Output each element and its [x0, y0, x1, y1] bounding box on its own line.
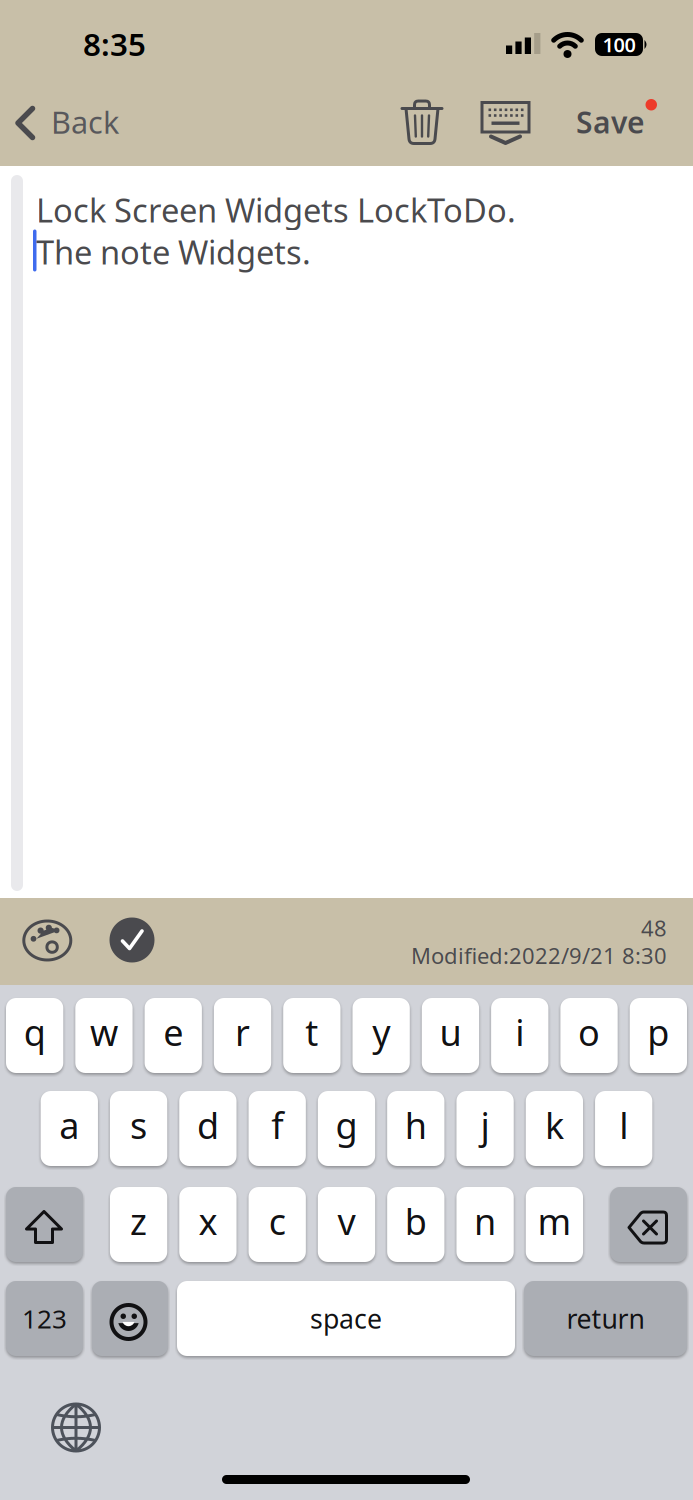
- button[interactable]: k: [526, 1091, 583, 1166]
- staticText: q: [24, 1007, 46, 1056]
- button[interactable]: Colors: [18, 915, 74, 965]
- staticText: t: [305, 1007, 318, 1056]
- button[interactable]: v: [318, 1187, 375, 1262]
- button[interactable]: p: [630, 998, 687, 1073]
- button[interactable]: n: [456, 1187, 514, 1262]
- button[interactable]: b: [387, 1187, 444, 1262]
- button[interactable]: Shift: [6, 1187, 83, 1262]
- button[interactable]: z: [110, 1187, 167, 1262]
- button[interactable]: r: [214, 998, 271, 1073]
- button[interactable]: return: [524, 1281, 687, 1356]
- staticText: k: [545, 1100, 564, 1149]
- button[interactable]: h: [387, 1091, 444, 1166]
- staticText: s: [130, 1100, 147, 1149]
- button[interactable]: d: [179, 1091, 236, 1166]
- staticText: r: [235, 1007, 250, 1056]
- staticText: z: [130, 1196, 147, 1245]
- staticText: p: [647, 1007, 669, 1056]
- button[interactable]: Next keyboard: [46, 1397, 106, 1457]
- button[interactable]: g: [318, 1091, 375, 1166]
- button[interactable]: q: [6, 998, 63, 1073]
- staticText: v: [337, 1196, 355, 1245]
- staticText: Back: [51, 101, 119, 143]
- button[interactable]: w: [75, 998, 133, 1073]
- staticText: g: [335, 1100, 357, 1149]
- button[interactable]: Save: [576, 101, 645, 142]
- staticText: j: [481, 1100, 490, 1149]
- button[interactable]: Emoji: [92, 1281, 168, 1356]
- button[interactable]: 123: [6, 1281, 83, 1356]
- button[interactable]: i: [491, 998, 548, 1073]
- staticText: u: [439, 1007, 461, 1056]
- button[interactable]: Delete: [610, 1187, 687, 1262]
- staticText: a: [59, 1100, 79, 1149]
- staticText: h: [405, 1100, 427, 1149]
- button[interactable]: m: [526, 1187, 583, 1262]
- button[interactable]: space: [177, 1281, 515, 1356]
- staticText: f: [271, 1100, 283, 1149]
- staticText: 8:35: [83, 22, 146, 65]
- button[interactable]: Delete note: [396, 97, 448, 149]
- staticText: d: [197, 1100, 219, 1149]
- staticText: o: [578, 1007, 600, 1056]
- staticText: l: [619, 1100, 628, 1149]
- staticText: e: [163, 1007, 183, 1056]
- staticText: The note Widgets.: [36, 229, 311, 274]
- staticText: space: [310, 1300, 382, 1337]
- staticText: c: [269, 1196, 286, 1245]
- staticText: n: [474, 1196, 496, 1245]
- staticText: 123: [22, 1301, 67, 1336]
- staticText: m: [537, 1196, 571, 1245]
- button[interactable]: j: [456, 1091, 514, 1166]
- button[interactable]: x: [179, 1187, 236, 1262]
- button[interactable]: l: [595, 1091, 652, 1166]
- staticText: 48: [641, 913, 667, 943]
- button[interactable]: Back: [19, 101, 129, 145]
- staticText: Lock Screen Widgets LockToDo.: [36, 187, 516, 232]
- staticText: Modified:2022/9/21 8:30: [411, 940, 667, 970]
- button[interactable]: y: [352, 998, 410, 1073]
- button[interactable]: Done: [109, 917, 154, 962]
- button[interactable]: o: [560, 998, 618, 1073]
- staticText: Save: [576, 101, 645, 142]
- staticText: x: [198, 1196, 217, 1245]
- staticText: y: [372, 1007, 390, 1056]
- staticText: 100: [602, 31, 635, 58]
- staticText: i: [515, 1007, 524, 1056]
- button[interactable]: s: [110, 1091, 167, 1166]
- button[interactable]: t: [283, 998, 340, 1073]
- staticText: b: [405, 1196, 427, 1245]
- button[interactable]: f: [248, 1091, 306, 1166]
- button[interactable]: c: [249, 1187, 306, 1262]
- button[interactable]: e: [145, 998, 202, 1073]
- button[interactable]: Dismiss keyboard: [478, 97, 534, 149]
- button[interactable]: a: [41, 1091, 98, 1166]
- button[interactable]: u: [422, 998, 479, 1073]
- staticText: return: [566, 1300, 644, 1337]
- staticText: w: [90, 1007, 118, 1056]
